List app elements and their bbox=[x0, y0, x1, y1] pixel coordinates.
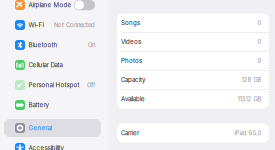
staticText: Available bbox=[121, 95, 145, 103]
staticText: iPad 65.0 bbox=[234, 129, 261, 137]
button[interactable]: Personal Hotspot bbox=[0, 75, 108, 95]
button[interactable]: Airplane Mode bbox=[0, 0, 108, 15]
staticText: Capacity bbox=[121, 76, 145, 83]
staticText: 0 bbox=[257, 57, 261, 64]
button[interactable]: Battery bbox=[0, 95, 108, 115]
button[interactable]: Cellular Data bbox=[0, 55, 108, 75]
staticText: Bluetooth bbox=[28, 41, 57, 49]
button[interactable]: General bbox=[0, 118, 108, 138]
staticText: 128 GB bbox=[241, 76, 261, 83]
staticText: Personal Hotspot bbox=[28, 81, 79, 89]
button[interactable]: Bluetooth bbox=[0, 35, 108, 55]
staticText: Off bbox=[87, 81, 95, 89]
staticText: Airplane Mode bbox=[28, 1, 71, 9]
staticText: Carrier bbox=[121, 129, 139, 137]
staticText: 0 bbox=[257, 19, 261, 26]
staticText: Songs bbox=[121, 19, 140, 26]
staticText: Cellular Data bbox=[28, 61, 62, 69]
button[interactable]: Accessibility bbox=[0, 138, 108, 150]
button[interactable]: Wi-Fi bbox=[0, 15, 108, 35]
staticText: Videos bbox=[121, 38, 141, 45]
staticText: General bbox=[28, 124, 51, 132]
staticText: Battery bbox=[28, 101, 48, 109]
staticText: 113.12 GB bbox=[237, 95, 261, 103]
staticText: 0 bbox=[257, 38, 261, 45]
staticText: Photos bbox=[121, 57, 142, 64]
staticText: Not Connected bbox=[54, 21, 95, 29]
staticText: On bbox=[88, 41, 95, 49]
staticText: Wi-Fi bbox=[28, 21, 43, 29]
staticText: Accessibility bbox=[28, 144, 63, 150]
